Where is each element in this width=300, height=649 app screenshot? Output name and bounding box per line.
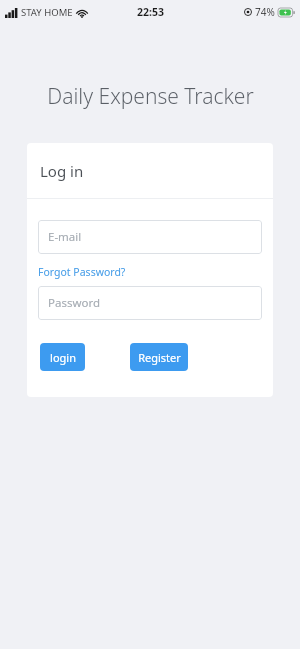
staticText: login xyxy=(50,350,76,365)
staticText: E-mail xyxy=(48,229,82,245)
button[interactable]: Forgot Password? xyxy=(38,263,126,281)
button[interactable]: Password xyxy=(38,286,262,320)
staticText: Password xyxy=(48,295,101,311)
staticText: Log in xyxy=(40,161,84,181)
button[interactable]: E-mail xyxy=(38,220,262,254)
staticText: STAY HOME xyxy=(21,6,73,19)
staticText: 22:53 xyxy=(137,5,164,19)
staticText: Register xyxy=(138,350,181,365)
staticText: Forgot Password? xyxy=(38,265,126,279)
staticText: Daily Expense Tracker xyxy=(47,82,254,111)
staticText: 74% xyxy=(255,5,275,19)
button[interactable]: Register xyxy=(130,343,188,371)
button[interactable]: login xyxy=(40,343,85,371)
